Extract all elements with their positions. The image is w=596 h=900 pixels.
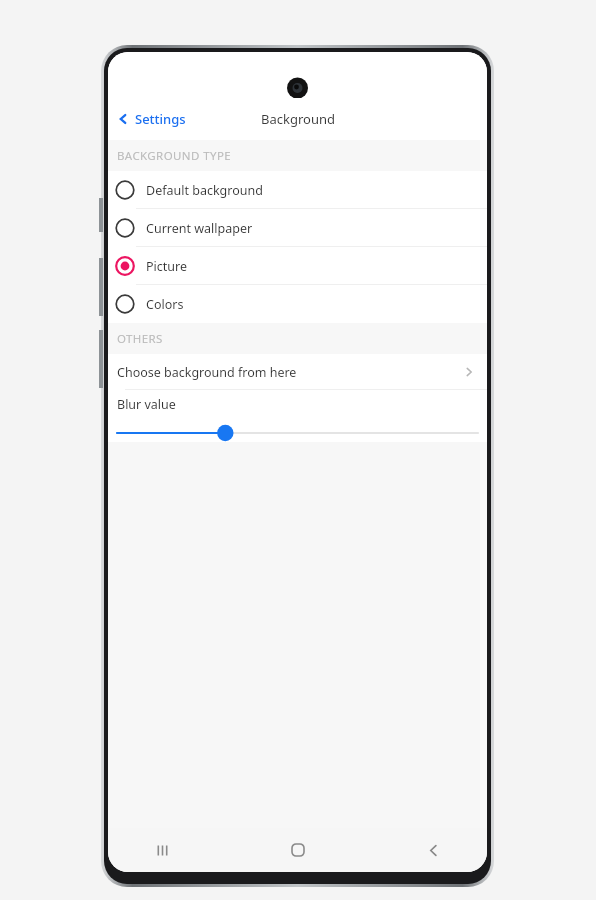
staticText: Default background (146, 182, 263, 199)
staticText: Colors (146, 296, 184, 313)
staticText: BACKGROUND TYPE (117, 148, 232, 164)
button[interactable]: Recent apps (142, 830, 182, 870)
button[interactable]: Blur value (108, 390, 487, 442)
button[interactable]: Picture (108, 247, 487, 285)
button[interactable]: Back (413, 830, 453, 870)
staticText: OTHERS (117, 331, 163, 347)
button[interactable]: Default background (108, 171, 487, 209)
staticText: Choose background from here (117, 364, 297, 381)
button[interactable]: Choose background from here (108, 354, 487, 390)
staticText: Current wallpaper (146, 220, 253, 237)
button[interactable]: Settings (108, 106, 196, 132)
button[interactable]: Current wallpaper (108, 209, 487, 247)
staticText: Background (261, 110, 335, 128)
button[interactable]: Colors (108, 285, 487, 323)
staticText: Settings (135, 110, 186, 128)
button[interactable]: Home (278, 830, 318, 870)
staticText: Blur value (117, 396, 176, 413)
staticText: Picture (146, 258, 187, 275)
